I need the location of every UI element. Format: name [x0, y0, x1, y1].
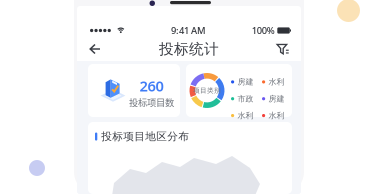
staticText: 260 — [139, 76, 163, 95]
staticText: 投标项目地区分布 — [101, 130, 189, 143]
staticText: 水利 — [268, 111, 284, 120]
button[interactable]: Back — [83, 38, 106, 59]
button[interactable]: 项目类别 — [186, 64, 292, 117]
staticText: 9:41 AM — [171, 24, 206, 37]
button[interactable]: Filter — [270, 38, 295, 60]
staticText: 市政 — [237, 94, 253, 104]
staticText: 投标项目数 — [129, 95, 174, 109]
staticText: 水利 — [268, 77, 284, 87]
staticText: 水利 — [237, 111, 253, 120]
staticText: 100% — [252, 24, 275, 37]
staticText: 项目类别 — [193, 86, 221, 95]
staticText: 房建 — [237, 77, 253, 87]
staticText: 房建 — [268, 94, 284, 104]
button[interactable]: 260 — [88, 64, 180, 117]
staticText: 投标统计 — [159, 40, 219, 58]
